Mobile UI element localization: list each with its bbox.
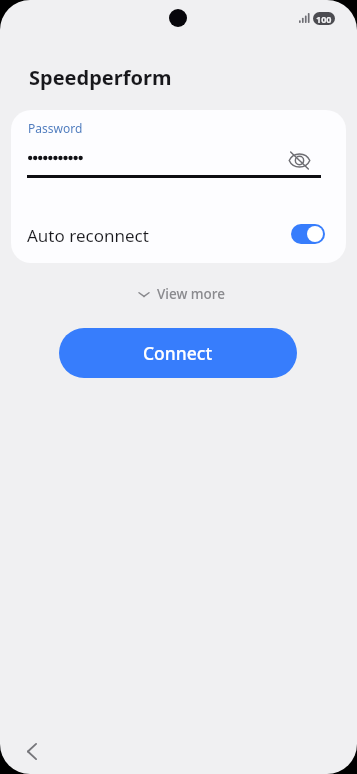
button[interactable]: Password field — [21, 114, 291, 178]
staticText: Password — [28, 120, 83, 136]
staticText: Connect — [143, 341, 213, 365]
staticText: 100 — [316, 13, 332, 25]
button[interactable]: Auto reconnect — [291, 224, 325, 244]
button[interactable]: View more — [133, 282, 232, 306]
staticText: View more — [157, 285, 226, 303]
button[interactable]: Back — [16, 735, 48, 767]
staticText: Speedperform — [29, 64, 172, 91]
staticText: Auto reconnect — [27, 224, 149, 247]
button[interactable]: Connect — [59, 328, 297, 378]
button[interactable]: Hide password — [284, 145, 315, 176]
